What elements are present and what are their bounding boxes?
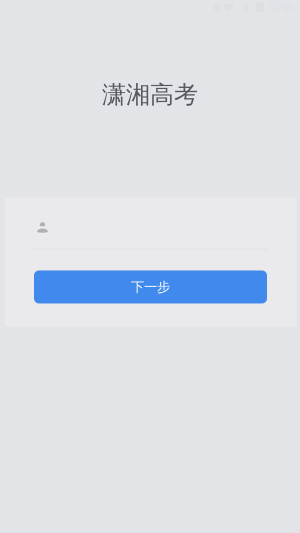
staticText: 潇湘高考: [102, 80, 198, 109]
staticText: 下一步: [131, 279, 170, 295]
button[interactable]: 下一步: [34, 270, 267, 303]
button[interactable]: Account: [5, 197, 297, 248]
